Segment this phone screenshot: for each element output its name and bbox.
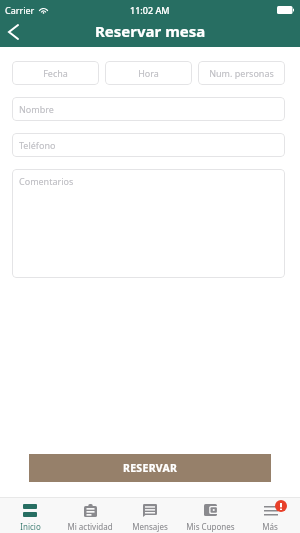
staticText: Teléfono [19, 139, 278, 151]
staticText: Comentarios [19, 175, 278, 187]
staticText: Reservar mesa [95, 21, 206, 41]
button[interactable]: Mis Cupones [180, 498, 240, 533]
staticText: Carrier [5, 4, 35, 16]
staticText: RESERVAR [123, 461, 178, 475]
button[interactable]: RESERVAR [29, 454, 271, 482]
staticText: Mensajes [132, 521, 168, 532]
staticText: Mis Cupones [186, 521, 235, 532]
staticText: 11:02 AM [130, 4, 170, 16]
button[interactable]: Back [0, 20, 36, 47]
button[interactable]: Hora [105, 61, 192, 85]
button[interactable]: Mi actividad [60, 498, 120, 533]
button[interactable]: Comentarios [12, 169, 285, 278]
button[interactable]: Teléfono [12, 133, 285, 157]
staticText: Mi actividad [67, 521, 113, 532]
staticText: Inicio [20, 521, 41, 532]
button[interactable]: Fecha [12, 61, 99, 85]
staticText: Fecha [19, 67, 92, 79]
button[interactable]: Nombre [12, 97, 285, 121]
staticText: Nombre [19, 103, 278, 115]
button[interactable]: Mensajes [120, 498, 180, 533]
button[interactable]: Inicio [0, 498, 60, 533]
button[interactable]: Más [240, 498, 300, 533]
button[interactable]: Num. personas [198, 61, 285, 85]
staticText: Num. personas [205, 67, 278, 79]
staticText: Hora [112, 67, 185, 79]
staticText: Más [262, 521, 278, 532]
